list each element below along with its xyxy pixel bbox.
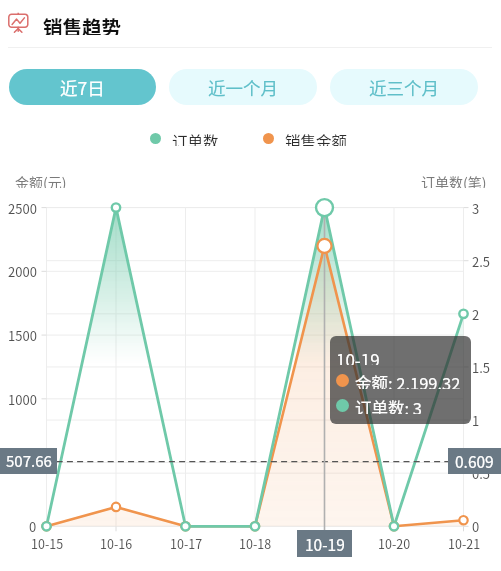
- staticText: 金额(元): [15, 172, 67, 188]
- staticText: 2.5: [472, 252, 491, 270]
- staticText: 2000: [8, 262, 37, 280]
- button[interactable]: 10-19: [297, 530, 352, 557]
- staticText: 订单数(笔): [421, 172, 487, 188]
- staticText: 2: [472, 305, 480, 323]
- staticText: 10-16: [100, 534, 133, 552]
- button[interactable]: 近三个月: [330, 69, 478, 105]
- staticText: 近三个月: [369, 75, 439, 100]
- staticText: 订单数: 3: [355, 396, 422, 414]
- staticText: 金额: 2,199.32: [355, 371, 461, 389]
- staticText: 507.66: [6, 450, 52, 472]
- staticText: 订单数: [172, 130, 219, 146]
- staticText: 10-17: [170, 534, 203, 552]
- button[interactable]: 近7日: [9, 69, 156, 105]
- other: Sales chart: [8, 12, 29, 33]
- staticText: 1500: [8, 326, 37, 344]
- staticText: 10-19: [305, 533, 345, 555]
- staticText: 1000: [8, 390, 37, 408]
- staticText: 10-15: [31, 534, 64, 552]
- staticText: 10-20: [378, 534, 411, 552]
- staticText: 0: [29, 517, 37, 535]
- staticText: 500: [15, 454, 37, 472]
- button[interactable]: 近一个月: [169, 69, 317, 105]
- staticText: 2500: [8, 199, 37, 217]
- staticText: 销售趋势: [43, 12, 122, 35]
- staticText: 0: [472, 517, 480, 535]
- staticText: 近一个月: [208, 75, 278, 100]
- staticText: 10-18: [239, 534, 272, 552]
- staticText: 0.5: [472, 464, 491, 482]
- staticText: 近7日: [60, 75, 105, 100]
- staticText: 10-19: [336, 347, 380, 365]
- staticText: 3: [472, 199, 480, 217]
- staticText: 1.5: [472, 358, 491, 376]
- staticText: 1: [472, 411, 480, 429]
- staticText: 销售金额: [285, 130, 348, 146]
- staticText: 0.609: [455, 450, 494, 472]
- staticText: 10-21: [448, 534, 481, 552]
